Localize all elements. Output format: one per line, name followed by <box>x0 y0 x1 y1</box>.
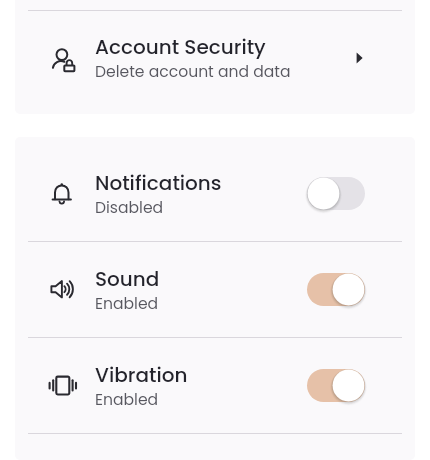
staticText: Disabled <box>95 197 164 219</box>
button[interactable]: Notifications toggle <box>307 177 365 210</box>
staticText: Enabled <box>95 293 159 315</box>
staticText: Enabled <box>95 389 159 411</box>
button[interactable]: Vibration toggle <box>307 369 365 402</box>
button[interactable]: Open Account Security <box>346 45 372 71</box>
button[interactable]: Sound <box>15 242 415 337</box>
staticText: Delete account and data <box>95 61 291 83</box>
button[interactable]: Notifications <box>15 146 415 241</box>
staticText: Account Security <box>95 33 266 61</box>
staticText: Notifications <box>95 169 222 197</box>
button[interactable]: Account Security <box>15 11 415 104</box>
staticText: Sound <box>95 265 160 293</box>
staticText: Vibration <box>95 361 188 389</box>
button[interactable]: Vibration <box>15 338 415 433</box>
button[interactable]: Sound toggle <box>307 273 365 306</box>
